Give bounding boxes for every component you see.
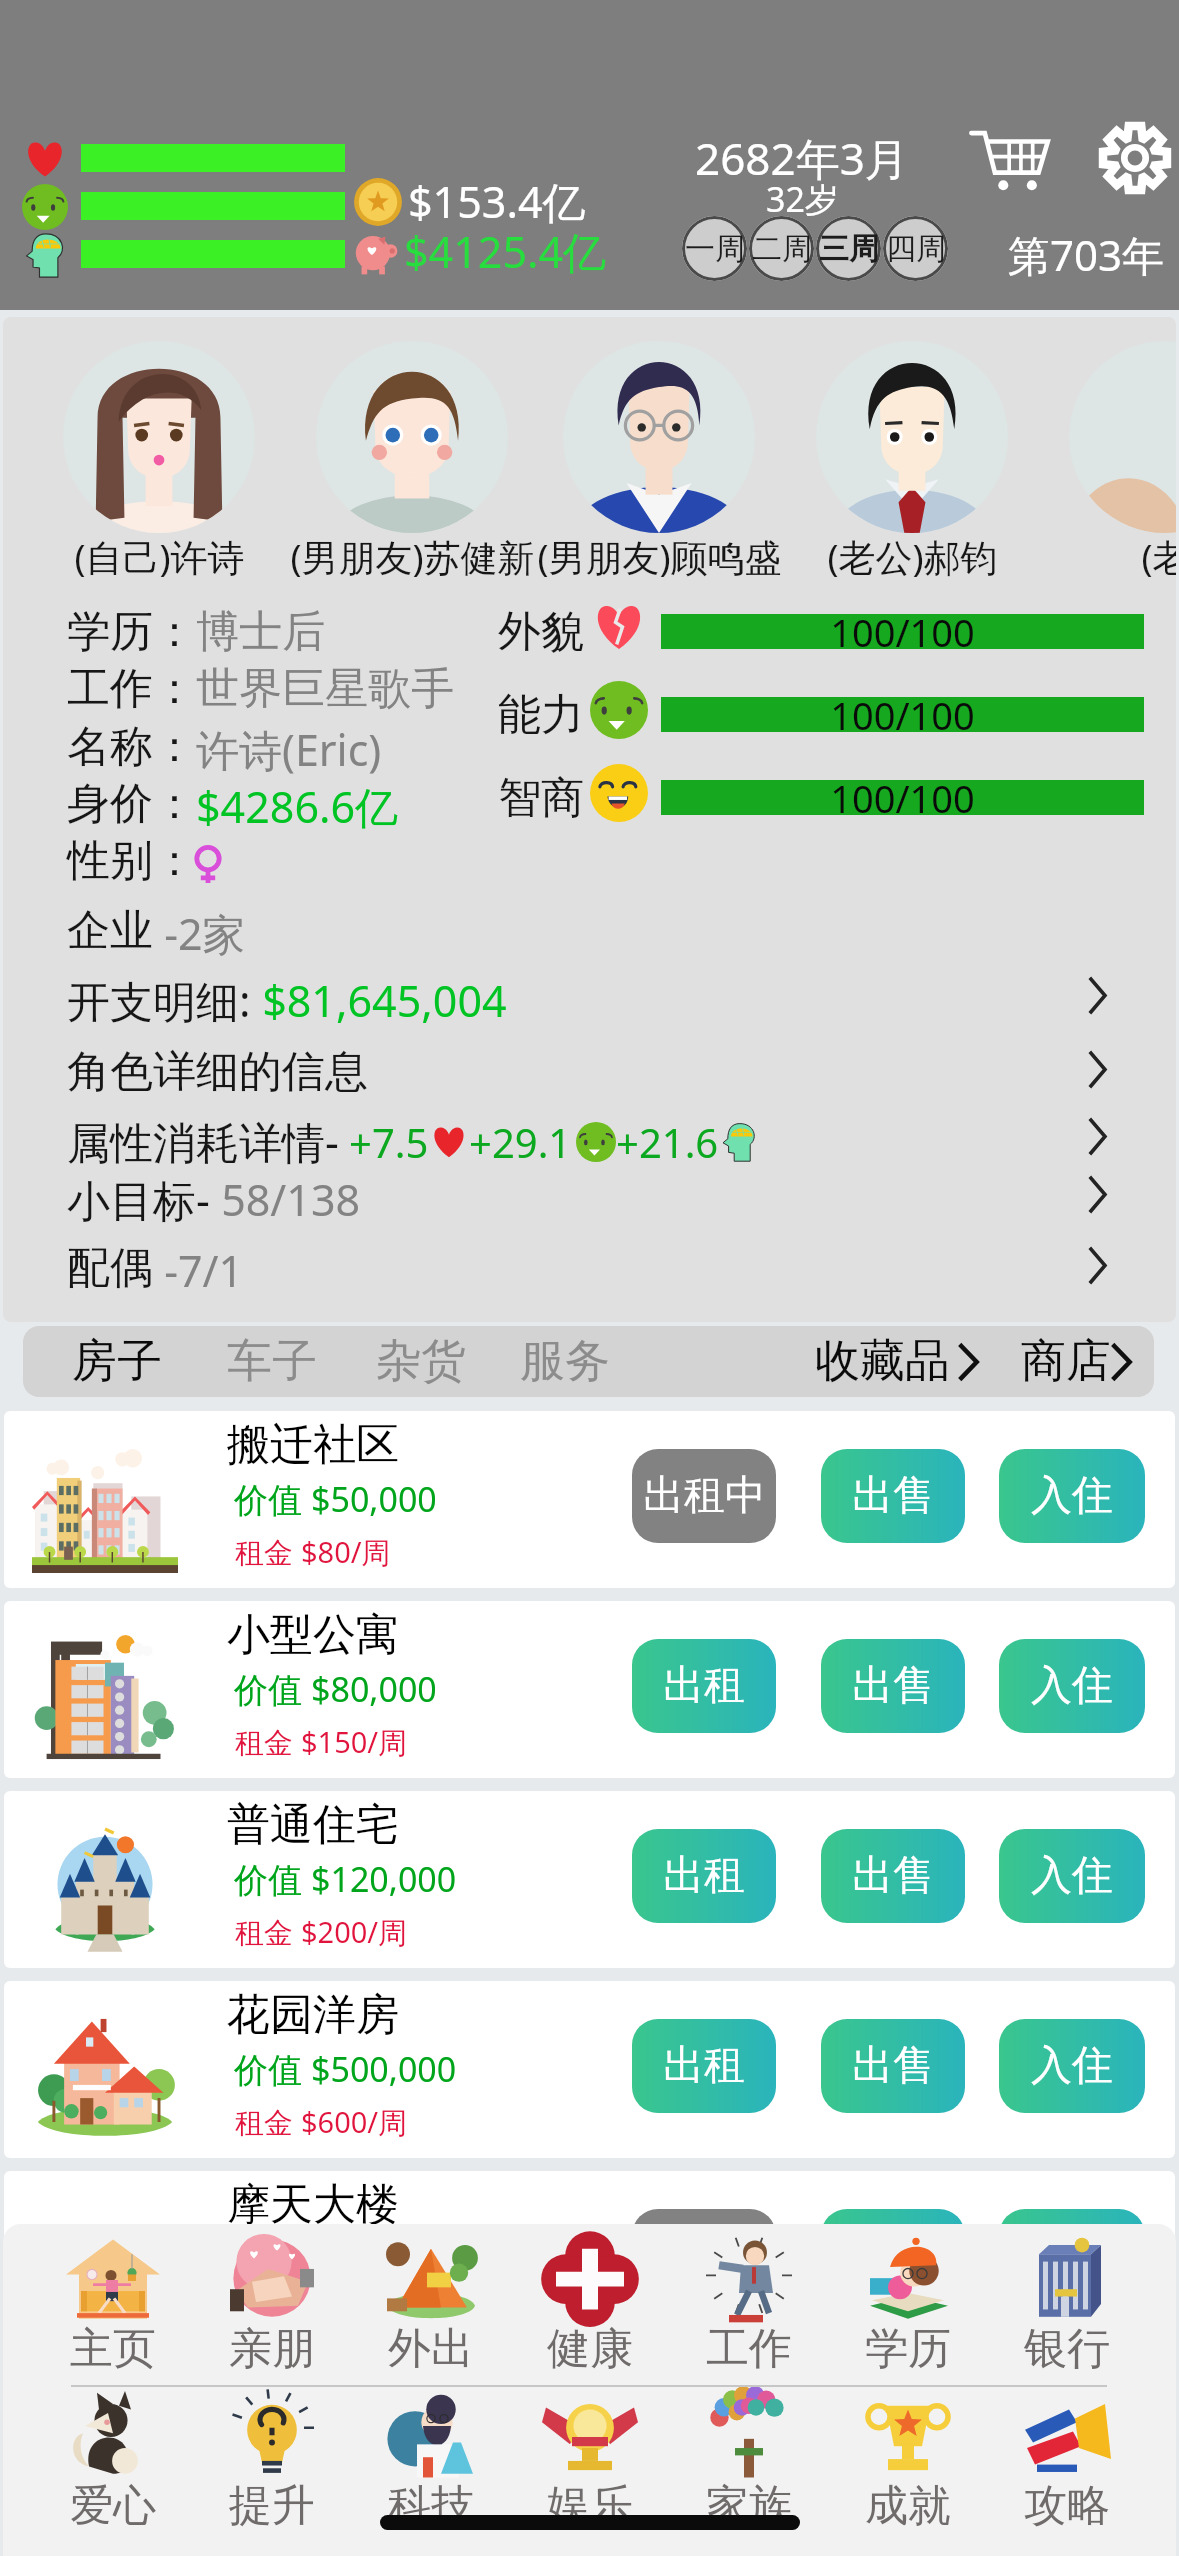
staticText: 健康 — [547, 2322, 633, 2376]
button[interactable]: 四周 — [883, 216, 948, 281]
button[interactable]: Settings — [1098, 121, 1172, 195]
button[interactable]: 入住 — [999, 2019, 1145, 2113]
button[interactable]: 攻略 — [984, 2391, 1150, 2537]
button[interactable]: (老 — [1069, 341, 1176, 533]
staticText: 租金 — [235, 1722, 301, 1762]
staticText: 开支明细: — [67, 971, 251, 1030]
staticText: 花园洋房 — [227, 1988, 399, 2042]
staticText: 入住 — [1031, 1470, 1113, 1522]
button[interactable]: 出售 — [821, 2019, 965, 2113]
staticText: 32岁 — [766, 176, 839, 222]
button[interactable]: 主页 — [30, 2234, 196, 2380]
button[interactable]: 出售 — [821, 1449, 965, 1543]
button[interactable]: 车子 — [217, 1326, 327, 1397]
button[interactable]: 普通住宅 — [4, 1791, 1175, 1968]
staticText: 第703年 — [1008, 226, 1165, 283]
button[interactable]: 出售 — [821, 1639, 965, 1733]
staticText: 租金 — [235, 1912, 301, 1952]
staticText: $600/周 — [301, 2102, 408, 2142]
button[interactable]: (男朋友)苏健新 — [316, 341, 508, 533]
staticText: 四周 — [886, 230, 946, 268]
button[interactable]: 服务 — [510, 1326, 620, 1397]
button[interactable]: 属性消耗详情- — [3, 1110, 1176, 1177]
button[interactable]: 提升 — [189, 2391, 355, 2537]
staticText: 商店 — [1021, 1333, 1111, 1390]
staticText: (老 — [1141, 531, 1176, 582]
button[interactable]: 健康 — [507, 2234, 673, 2380]
staticText: $500,000 — [311, 2046, 457, 2092]
button[interactable]: 家族 — [666, 2391, 832, 2537]
button[interactable]: 搬迁社区 — [4, 1411, 1175, 1588]
staticText: +21.6 — [616, 1115, 719, 1169]
staticText: 娱乐 — [547, 2479, 633, 2533]
button[interactable]: 出租中 — [632, 2209, 776, 2303]
button[interactable]: 出售 — [821, 1829, 965, 1923]
button[interactable]: 企业 — [3, 902, 1176, 969]
button[interactable]: 房子 — [62, 1326, 172, 1397]
staticText: 银行 — [1024, 2322, 1110, 2376]
staticText: $200/周 — [301, 1912, 408, 1952]
staticText: 租金 — [235, 2102, 301, 2142]
button[interactable]: 配偶 — [3, 1239, 1176, 1306]
staticText: -7/1 — [153, 1241, 244, 1300]
staticText: +29.1 — [469, 1115, 572, 1169]
staticText: 价值 — [234, 1856, 311, 1902]
staticText: 爱心 — [70, 2479, 156, 2533]
button[interactable]: 一周 — [682, 216, 747, 281]
staticText: 服务 — [520, 1333, 610, 1390]
staticText: $4286.6亿 — [196, 777, 399, 836]
staticText: 入住 — [1031, 2040, 1113, 2092]
button[interactable]: 娱乐 — [507, 2391, 673, 2537]
staticText: 房子 — [72, 1333, 162, 1390]
staticText: 车子 — [227, 1333, 317, 1390]
button[interactable]: 小目标- — [3, 1168, 1176, 1235]
button[interactable]: 外出 — [348, 2234, 514, 2380]
staticText: 出售 — [852, 2040, 934, 2092]
button[interactable]: 科技 — [348, 2391, 514, 2537]
button[interactable]: 成就 — [825, 2391, 991, 2537]
button[interactable]: 出租 — [632, 1639, 776, 1733]
staticText: 攻略 — [1024, 2479, 1110, 2533]
button[interactable]: 商店 — [1021, 1326, 1133, 1397]
button[interactable]: 出租 — [632, 1829, 776, 1923]
button[interactable]: 小型公寓 — [4, 1601, 1175, 1778]
button[interactable]: 入住 — [999, 1829, 1145, 1923]
button[interactable]: 入住 — [999, 1449, 1145, 1543]
staticText: 出租 — [663, 1850, 745, 1902]
button[interactable]: (老公)郝钧 — [816, 341, 1008, 533]
staticText: 属性消耗详情- — [67, 1112, 339, 1171]
staticText: (男朋友)顾鸣盛 — [537, 531, 782, 582]
button[interactable]: Shop — [968, 118, 1052, 202]
button[interactable]: 出售 — [821, 2209, 965, 2303]
button[interactable]: 收藏品 — [815, 1326, 980, 1397]
staticText: 外貌 — [498, 605, 584, 659]
staticText: 摩天大楼 — [227, 2178, 399, 2232]
button[interactable]: 爱心 — [30, 2391, 196, 2537]
button[interactable]: 亲朋 — [189, 2234, 355, 2380]
button[interactable]: 杂货 — [366, 1326, 476, 1397]
staticText: 世界巨星歌手 — [196, 662, 454, 716]
button[interactable]: 花园洋房 — [4, 1981, 1175, 2158]
button[interactable]: 银行 — [984, 2234, 1150, 2380]
button[interactable]: 工作 — [666, 2234, 832, 2380]
button[interactable]: 入住 — [999, 2209, 1145, 2303]
staticText: 价值 — [234, 2236, 311, 2282]
staticText: +7.5 — [349, 1115, 429, 1169]
button[interactable]: 出租中 — [632, 1449, 776, 1543]
button[interactable]: (自己)许诗 — [63, 341, 255, 533]
staticText: 出售 — [852, 1470, 934, 1522]
staticText: 身价： — [67, 777, 196, 831]
button[interactable]: (男朋友)顾鸣盛 — [563, 341, 755, 533]
button[interactable]: 角色详细的信息 — [3, 1043, 1176, 1110]
button[interactable]: 开支明细: — [3, 969, 1176, 1036]
button[interactable]: 入住 — [999, 1639, 1145, 1733]
staticText: 入住 — [1031, 1850, 1113, 1902]
staticText: 价值 — [234, 1666, 311, 1712]
staticText: 杂货 — [376, 1333, 466, 1390]
button[interactable]: 二周 — [749, 216, 814, 281]
staticText: 家族 — [706, 2479, 792, 2533]
button[interactable]: 学历 — [825, 2234, 991, 2380]
button[interactable]: 摩天大楼 — [4, 2171, 1175, 2348]
button[interactable]: 三周 — [816, 216, 881, 281]
button[interactable]: 出租 — [632, 2019, 776, 2113]
